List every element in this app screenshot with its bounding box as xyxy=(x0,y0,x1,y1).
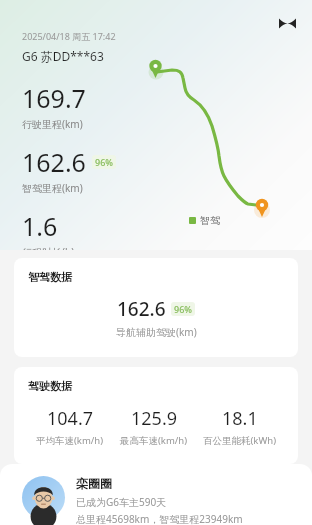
staticText: 智驾 xyxy=(200,214,220,227)
staticText: 行程时长(h) xyxy=(22,245,75,250)
staticText: 96% xyxy=(174,303,192,315)
staticText: 智驾数据 xyxy=(28,270,72,284)
staticText: 最高车速(km/h) xyxy=(120,434,188,447)
staticText: 18.1 xyxy=(222,406,258,431)
staticText: G6 苏DD***63 xyxy=(22,48,104,64)
staticText: 百公里能耗(kWh) xyxy=(203,434,276,447)
button[interactable]: 智驾数据 xyxy=(14,258,298,357)
staticText: 169.7 xyxy=(22,81,86,115)
staticText: 平均车速(km/h) xyxy=(36,434,104,447)
staticText: 总里程45698km，智驾里程23949km xyxy=(76,512,243,525)
staticText: 已成为G6车主590天 xyxy=(76,495,167,509)
staticText: 1.6 xyxy=(22,209,58,243)
staticText: 96% xyxy=(95,156,113,168)
button[interactable]: 驾驶数据 xyxy=(14,367,298,464)
staticText: 125.9 xyxy=(131,406,178,431)
staticText: 104.7 xyxy=(47,406,94,431)
staticText: 162.6 xyxy=(117,296,166,322)
staticText: 2025/04/18 周五 17:42 xyxy=(22,30,116,42)
button[interactable]: Close xyxy=(270,6,304,40)
staticText: 驾驶数据 xyxy=(28,379,72,393)
staticText: 导航辅助驾驶(km) xyxy=(116,325,197,339)
staticText: 行驶里程(km) xyxy=(22,117,83,131)
button[interactable]: 栾圈圈 xyxy=(0,464,312,525)
staticText: 智驾里程(km) xyxy=(22,181,83,195)
staticText: 栾圈圈 xyxy=(76,476,112,491)
staticText: 162.6 xyxy=(22,145,86,179)
